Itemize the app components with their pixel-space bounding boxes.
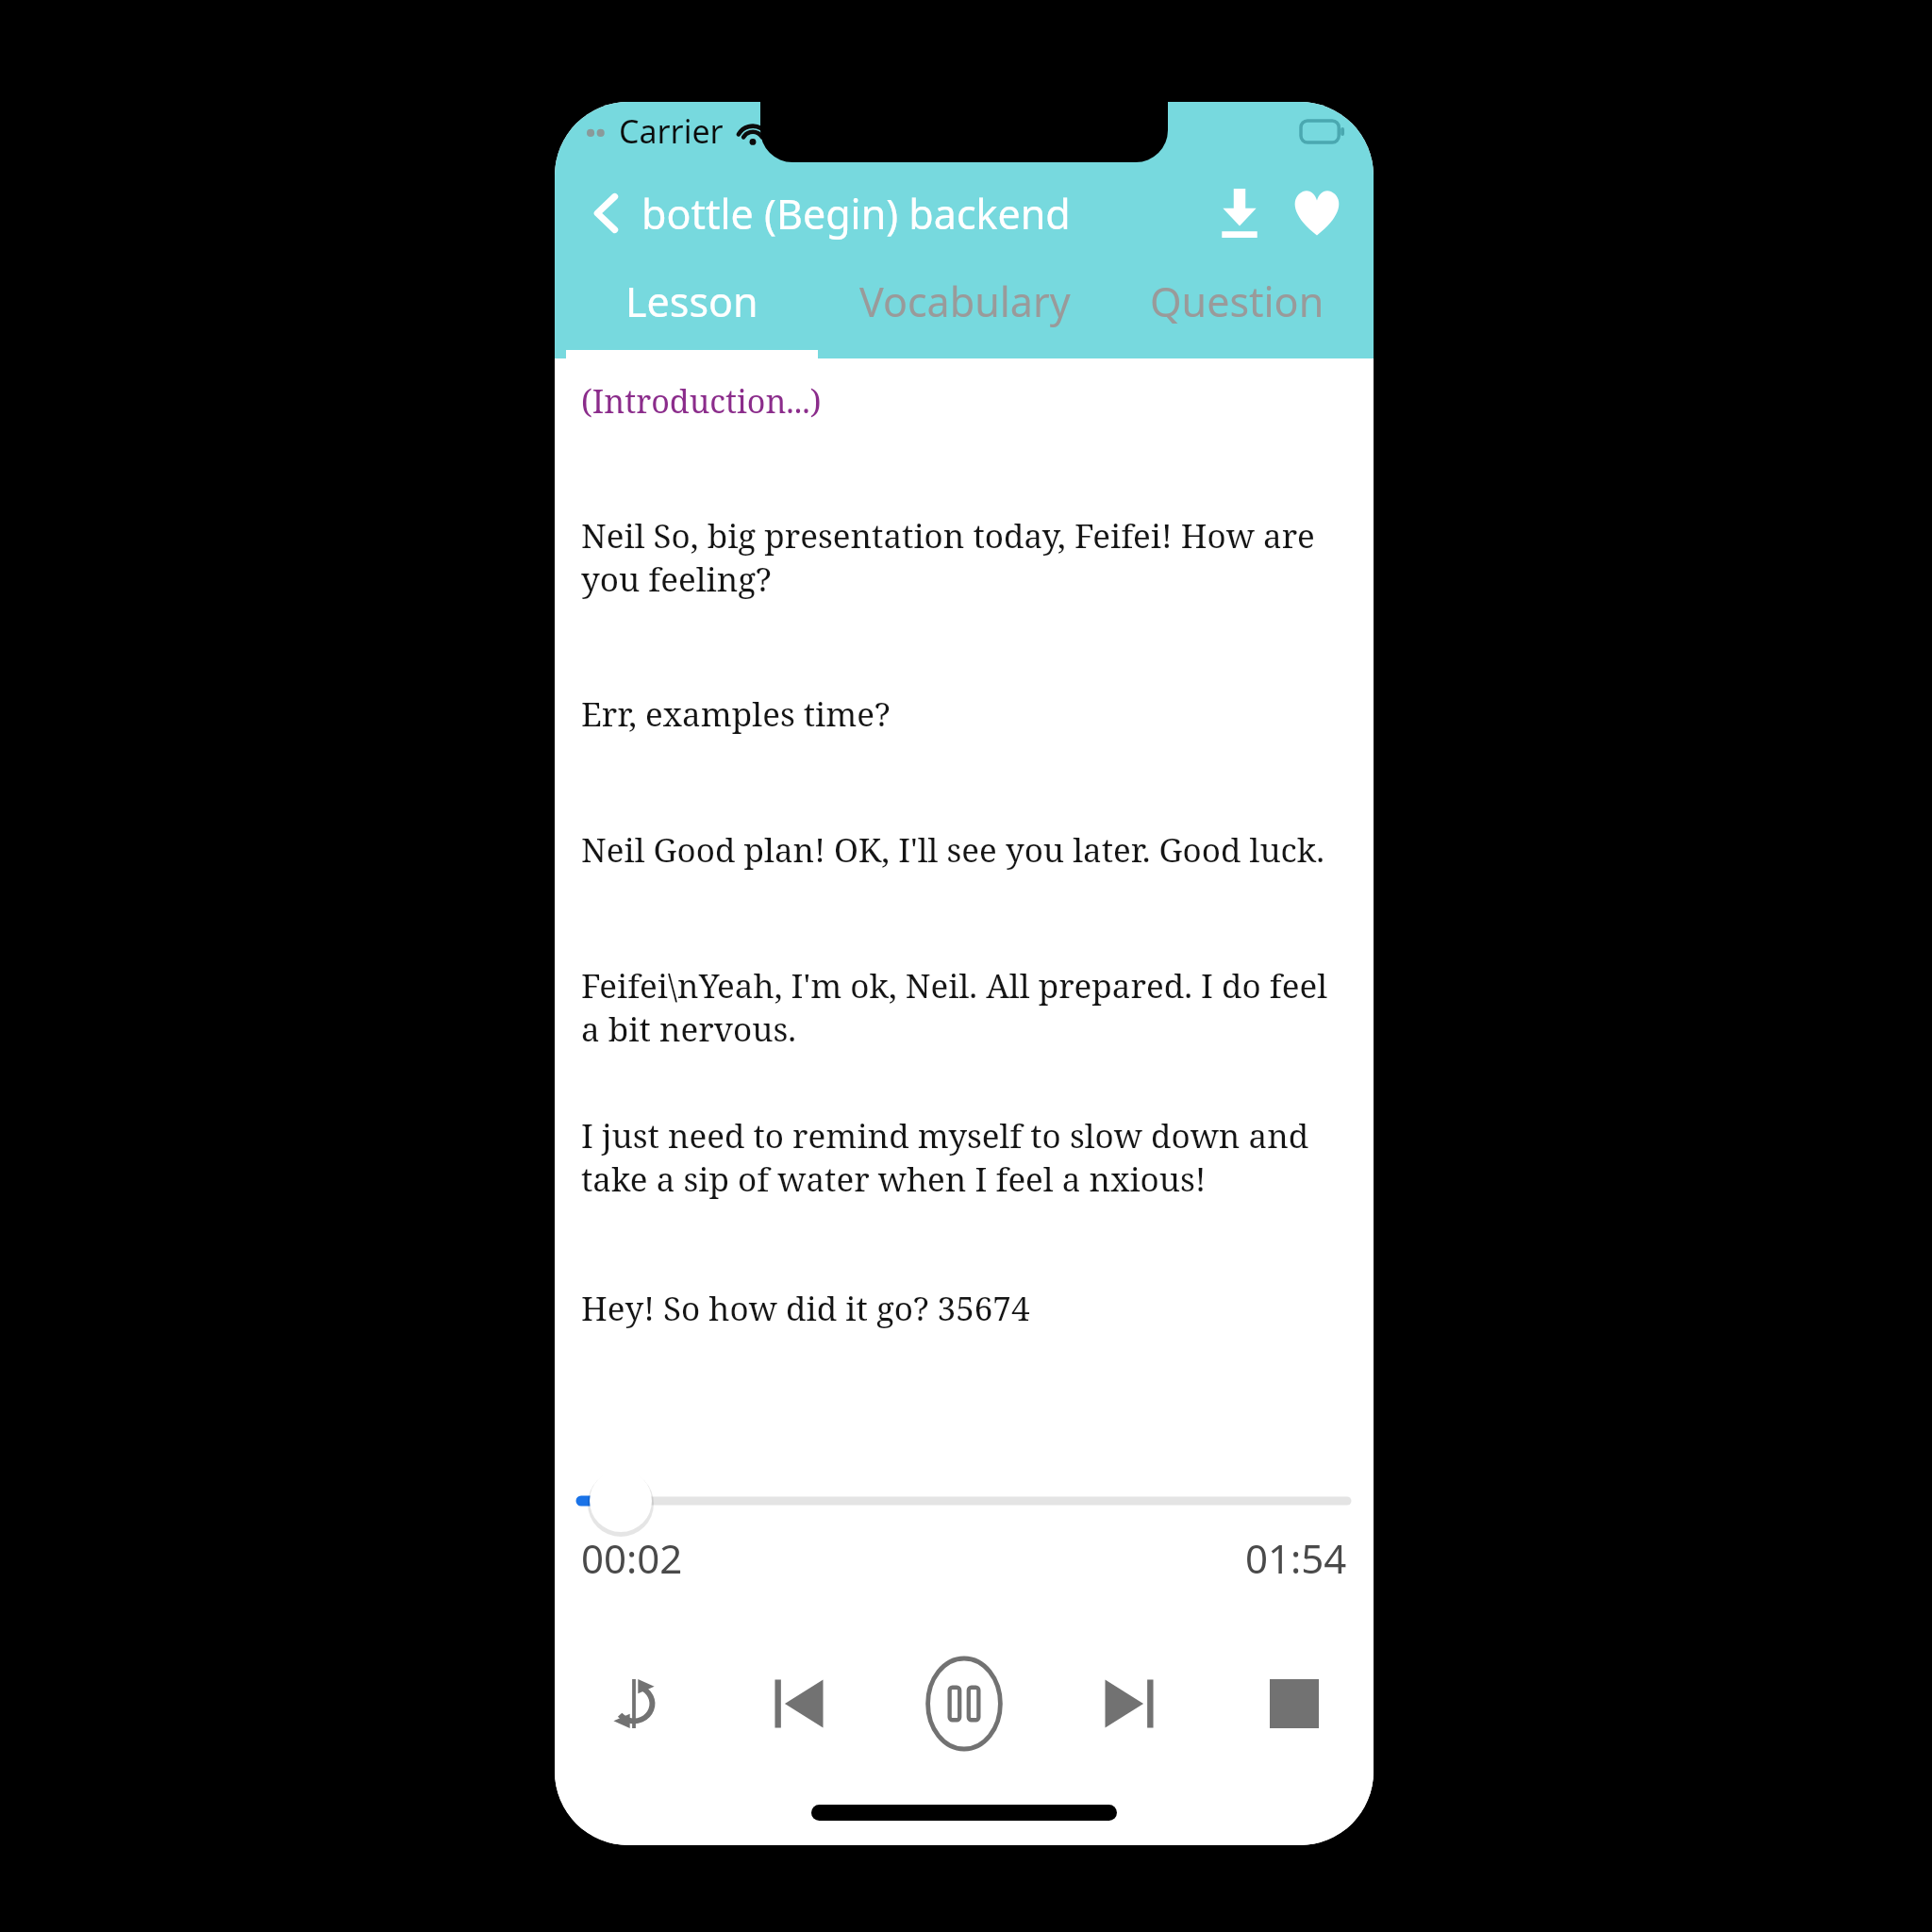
staticText: Neil So, big presentation today, Feifei!…: [581, 513, 1353, 601]
staticText: Neil Good plan! OK, I'll see you later. …: [581, 827, 1325, 873]
staticText: (Introduction...): [581, 379, 822, 423]
staticText: Err, examples time?: [581, 691, 891, 737]
staticText: Lesson: [625, 274, 758, 329]
staticText: Feifei\nYeah, I'm ok, Neil. All prepared…: [581, 963, 1353, 1051]
button[interactable]: Lesson: [555, 266, 828, 358]
staticText: Question: [1150, 274, 1324, 329]
staticText: Vocabulary: [859, 274, 1071, 329]
button[interactable]: Next: [1076, 1651, 1182, 1757]
staticText: I just need to remind myself to slow dow…: [581, 1113, 1353, 1201]
button[interactable]: Seek bar: [581, 1473, 1347, 1529]
button[interactable]: Repeat: [581, 1651, 687, 1757]
staticText: 01:54: [1245, 1531, 1347, 1585]
button[interactable]: Question: [1101, 266, 1374, 358]
button[interactable]: Previous: [746, 1651, 852, 1757]
button[interactable]: Stop: [1241, 1651, 1347, 1757]
staticText: bottle (Begin) backend: [641, 186, 1071, 241]
staticText: 00:02: [581, 1531, 683, 1585]
button[interactable]: Back: [575, 183, 636, 243]
button[interactable]: Vocabulary: [828, 266, 1101, 358]
button[interactable]: Favorite: [1283, 179, 1351, 247]
staticText: Hey! So how did it go? 35674: [581, 1286, 1030, 1331]
staticText: Carrier: [619, 109, 724, 153]
button[interactable]: Download: [1206, 179, 1274, 247]
button[interactable]: Pause: [911, 1651, 1017, 1757]
